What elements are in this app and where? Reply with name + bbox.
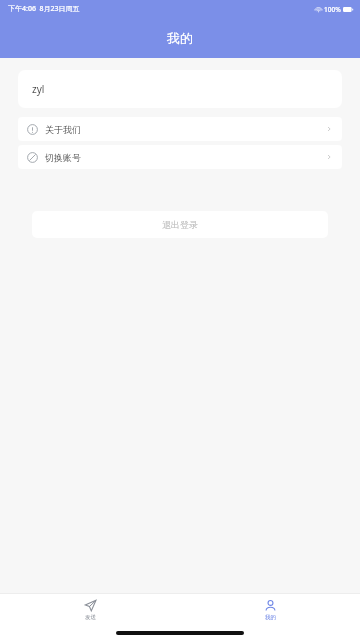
button[interactable]: 关于我们 <box>18 117 342 141</box>
staticText: 100% <box>324 5 341 14</box>
staticText: zyl <box>32 82 45 96</box>
button[interactable]: 退出登录 <box>32 211 328 238</box>
button[interactable]: 发送 <box>70 597 111 623</box>
button[interactable]: 切换账号 <box>18 145 342 169</box>
button[interactable]: zyl <box>18 70 342 108</box>
staticText: 我的 <box>167 30 193 46</box>
staticText: 我的 <box>265 614 276 621</box>
staticText: 发送 <box>85 614 96 621</box>
staticText: 退出登录 <box>162 219 198 230</box>
staticText: 下午4:06 8月23日周五 <box>8 4 80 14</box>
staticText: 关于我们 <box>45 124 81 135</box>
staticText: 切换账号 <box>45 152 81 163</box>
button[interactable]: 我的 <box>250 597 291 623</box>
